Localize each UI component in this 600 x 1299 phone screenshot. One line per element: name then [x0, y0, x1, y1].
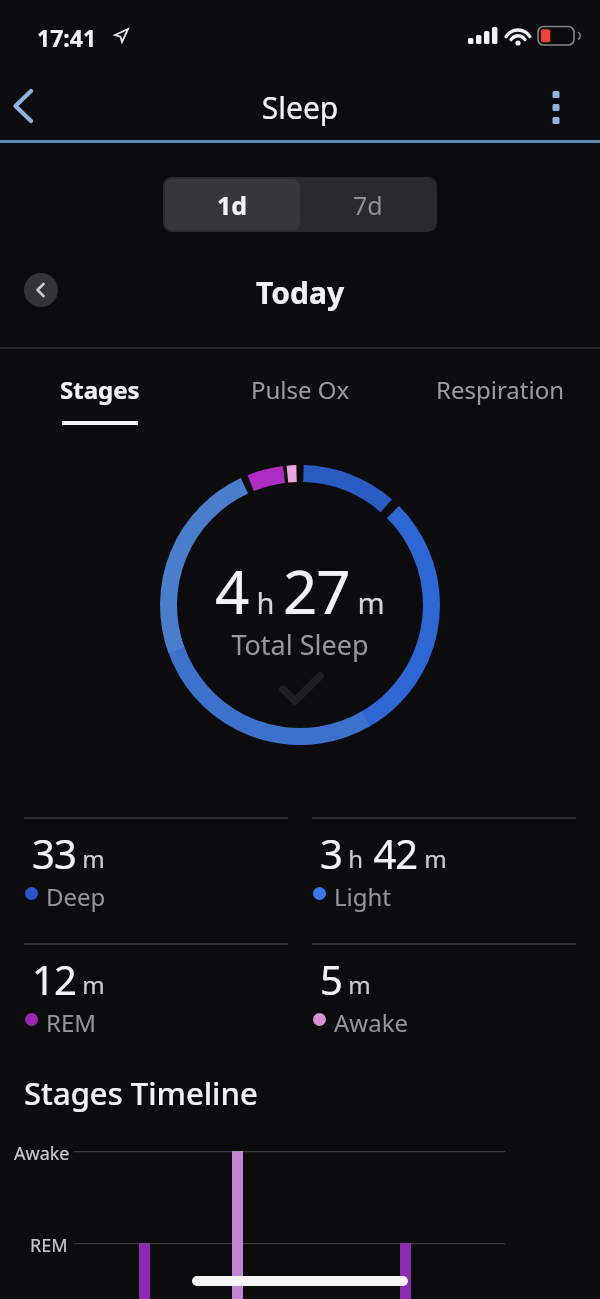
button[interactable]: Respiration [430, 362, 570, 416]
staticText: Stages [60, 373, 140, 406]
staticText: 33 [32, 826, 76, 880]
staticText: 17:41 [37, 22, 97, 53]
staticText: Total Sleep [0, 626, 600, 663]
staticText: 12 [32, 952, 76, 1006]
staticText: Pulse Ox [251, 373, 350, 406]
staticText: 5 [320, 952, 342, 1006]
staticText: Awake [334, 1006, 409, 1039]
staticText: 4 [215, 550, 249, 632]
staticText: h [249, 583, 283, 622]
staticText: 3 [320, 826, 342, 880]
staticText: m [342, 968, 371, 1001]
staticText: REM [30, 1233, 68, 1258]
button[interactable]: 1d [165, 179, 300, 230]
staticText: 7d [353, 188, 383, 222]
button[interactable] [534, 82, 578, 132]
staticText: Deep [46, 880, 106, 913]
staticText: m [76, 842, 105, 875]
staticText: m [76, 968, 105, 1001]
staticText: Stages Timeline [24, 1072, 258, 1114]
button[interactable] [24, 273, 58, 307]
staticText: 42 [364, 826, 418, 880]
button[interactable]: Stages [30, 362, 170, 416]
staticText: h [342, 842, 364, 875]
staticText: Today [0, 272, 600, 313]
button[interactable] [2, 79, 48, 125]
staticText: m [418, 842, 447, 875]
staticText: 1d [217, 188, 248, 222]
staticText: Light [334, 880, 392, 913]
button[interactable]: 7d [300, 179, 435, 230]
button[interactable]: Pulse Ox [230, 362, 370, 416]
staticText: REM [46, 1006, 97, 1039]
staticText: Awake [14, 1141, 70, 1166]
staticText: Sleep [0, 87, 600, 128]
staticText: 27 [283, 550, 350, 632]
staticText: m [350, 583, 385, 622]
staticText: Respiration [436, 373, 565, 406]
